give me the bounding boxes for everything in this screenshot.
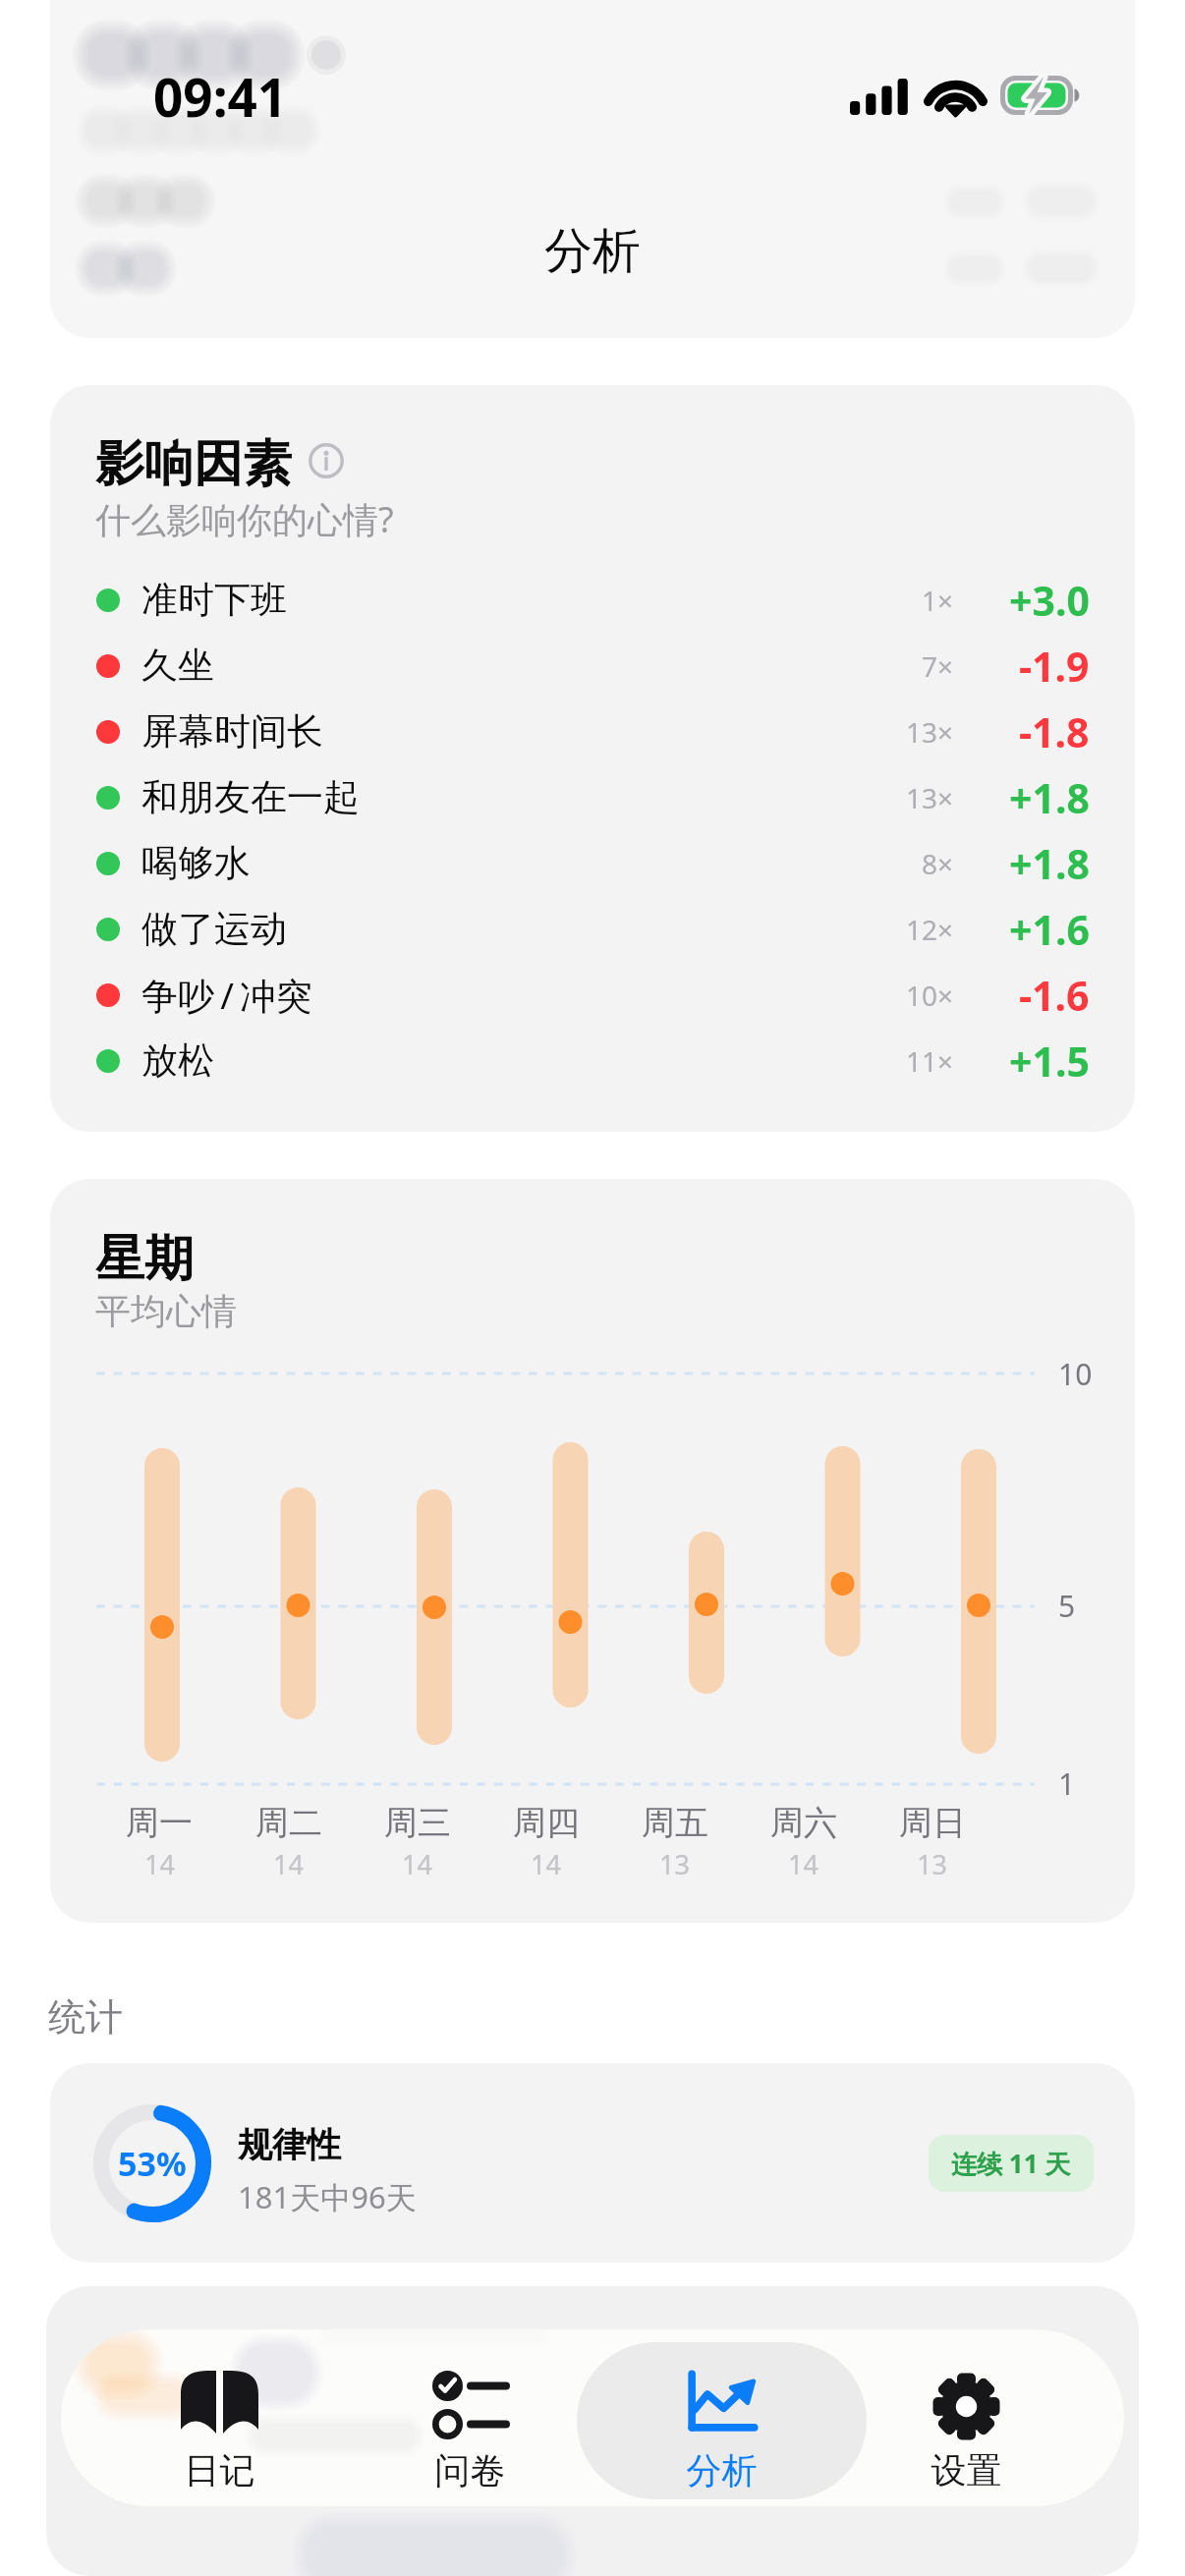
- staticText: 14: [273, 1846, 304, 1882]
- button[interactable]: 屏幕时间长: [95, 699, 1090, 764]
- staticText: 周四: [513, 1802, 580, 1844]
- other: 问卷: [432, 2371, 509, 2439]
- staticText: +1.8: [1009, 770, 1090, 825]
- button[interactable]: 问卷: [325, 2342, 615, 2499]
- button[interactable]: 53%: [50, 2063, 1135, 2263]
- button[interactable]: 和朋友在一起: [95, 764, 1090, 830]
- staticText: 规律性: [238, 2123, 341, 2166]
- button[interactable]: 喝够水: [95, 830, 1090, 896]
- button[interactable]: 放松: [95, 1028, 1090, 1093]
- staticText: 181天中96天: [238, 2176, 417, 2217]
- staticText: 日记: [75, 2448, 365, 2492]
- staticText: +1.6: [1009, 902, 1090, 957]
- staticText: 做了运动: [141, 906, 287, 952]
- staticText: 周日: [899, 1802, 966, 1844]
- staticText: 平均心情: [95, 1289, 237, 1333]
- button[interactable]: 争吵 / 冲突: [95, 962, 1090, 1028]
- other: 分析: [686, 2371, 758, 2434]
- staticText: 10×: [906, 977, 954, 1014]
- button[interactable]: 设置: [821, 2342, 1111, 2499]
- staticText: 周一: [126, 1802, 193, 1844]
- button[interactable]: 星期: [50, 1179, 1135, 1923]
- staticText: 和朋友在一起: [141, 774, 360, 820]
- staticText: 11×: [906, 1042, 954, 1080]
- button[interactable]: 分析: [577, 2342, 867, 2499]
- staticText: 13: [917, 1846, 947, 1882]
- staticText: 准时下班: [141, 577, 287, 623]
- staticText: 14: [144, 1846, 175, 1882]
- staticText: 1×: [922, 582, 954, 619]
- staticText: 屏幕时间长: [141, 708, 323, 755]
- staticText: 争吵 / 冲突: [141, 970, 313, 1020]
- staticText: +3.0: [1009, 573, 1090, 628]
- other: 设置: [931, 2371, 1002, 2442]
- staticText: 1: [1058, 1764, 1076, 1804]
- button[interactable]: 连续 11 天: [929, 2135, 1094, 2192]
- staticText: 7×: [922, 647, 954, 685]
- staticText: 8×: [922, 845, 954, 882]
- staticText: 周二: [255, 1802, 322, 1844]
- staticText: 09:41: [153, 61, 288, 132]
- button[interactable]: 准时下班: [95, 567, 1090, 633]
- staticText: -1.9: [1019, 639, 1090, 694]
- staticText: 什么影响你的心情?: [95, 495, 394, 543]
- button[interactable]: 日记: [75, 2342, 365, 2499]
- staticText: -1.6: [1019, 968, 1090, 1023]
- staticText: 周六: [770, 1802, 837, 1844]
- staticText: 13×: [906, 713, 954, 751]
- staticText: 14: [788, 1846, 818, 1882]
- staticText: 周三: [384, 1802, 451, 1844]
- staticText: 连续 11 天: [951, 2146, 1071, 2181]
- button[interactable]: 做了运动: [95, 896, 1090, 962]
- staticText: 12×: [906, 911, 954, 948]
- other: 日记: [181, 2371, 258, 2434]
- staticText: 周五: [642, 1802, 708, 1844]
- staticText: 14: [402, 1846, 432, 1882]
- staticText: 星期: [95, 1228, 194, 1290]
- staticText: 53%: [118, 2141, 187, 2186]
- staticText: 14: [531, 1846, 561, 1882]
- button[interactable]: 久坐: [95, 633, 1090, 699]
- staticText: 13×: [906, 779, 954, 816]
- staticText: 放松: [141, 1037, 214, 1084]
- staticText: 影响因素: [95, 433, 292, 495]
- staticText: 分析: [0, 221, 1185, 282]
- staticText: -1.8: [1019, 704, 1090, 759]
- staticText: 设置: [821, 2448, 1111, 2492]
- staticText: 5: [1058, 1586, 1076, 1626]
- staticText: 10: [1058, 1354, 1093, 1394]
- staticText: +1.5: [1009, 1034, 1090, 1089]
- staticText: +1.8: [1009, 836, 1090, 891]
- staticText: 问卷: [325, 2448, 615, 2492]
- staticText: 分析: [577, 2448, 867, 2492]
- staticText: 13: [659, 1846, 690, 1882]
- button[interactable]: 影响因素: [50, 385, 1135, 1132]
- staticText: 久坐: [141, 643, 214, 689]
- staticText: 统计: [48, 1993, 123, 2041]
- staticText: 喝够水: [141, 840, 251, 886]
